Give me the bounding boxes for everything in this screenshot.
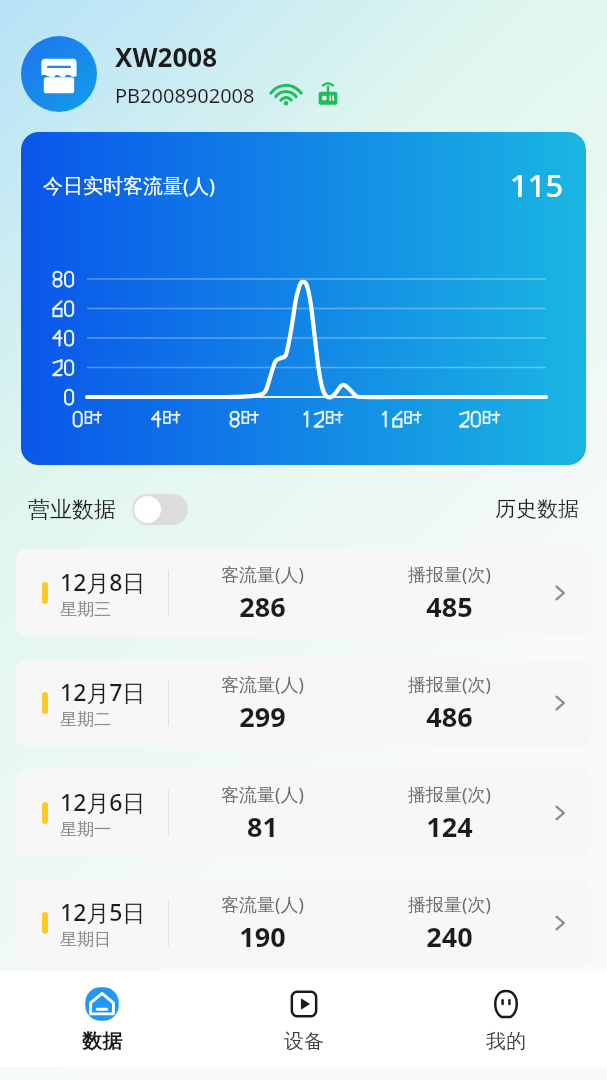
other: Device online [315, 83, 341, 109]
button[interactable]: 12月5日 [16, 879, 591, 967]
staticText: 历史数据 [495, 496, 579, 522]
staticText: 数据 [82, 1029, 122, 1054]
staticText: 客流量(人) [221, 672, 304, 697]
staticText: 今日实时客流量(人) [43, 172, 215, 199]
staticText: 星期日 [60, 929, 111, 950]
staticText: 星期三 [60, 599, 111, 620]
staticText: 485 [426, 588, 473, 625]
staticText: 客流量(人) [221, 892, 304, 917]
staticText: 营业数据 [28, 496, 116, 524]
staticText: 星期一 [60, 819, 111, 840]
button[interactable]: 今日实时客流量(人) [21, 132, 586, 465]
staticText: 我的 [486, 1029, 526, 1054]
button[interactable]: 我的 [405, 971, 607, 1067]
button[interactable]: 12月6日 [16, 769, 591, 857]
staticText: 12月8日 [60, 566, 146, 597]
staticText: 客流量(人) [221, 782, 304, 807]
other: Wi-Fi connected [273, 83, 299, 109]
button[interactable]: 12月8日 [16, 549, 591, 637]
staticText: 12月6日 [60, 786, 146, 817]
button[interactable]: 数据 [0, 971, 203, 1067]
staticText: 播报量(次) [408, 782, 491, 807]
staticText: 客流量(人) [221, 562, 304, 587]
staticText: 星期二 [60, 709, 111, 730]
staticText: 486 [426, 698, 473, 735]
staticText: XW2008 [115, 39, 218, 74]
staticText: 190 [239, 918, 286, 955]
staticText: 286 [239, 588, 286, 625]
button[interactable]: 设备 [203, 971, 405, 1067]
staticText: 设备 [284, 1029, 324, 1054]
staticText: 115 [510, 164, 564, 206]
staticText: 124 [426, 808, 473, 845]
staticText: 240 [426, 918, 473, 955]
staticText: 12月5日 [60, 896, 146, 927]
staticText: 81 [247, 808, 278, 845]
staticText: 播报量(次) [408, 892, 491, 917]
button[interactable]: 历史数据 [495, 496, 579, 522]
staticText: 299 [239, 698, 286, 735]
staticText: 12月7日 [60, 676, 146, 707]
button[interactable]: 营业数据 [28, 494, 188, 525]
staticText: 播报量(次) [408, 562, 491, 587]
staticText: 播报量(次) [408, 672, 491, 697]
staticText: PB2008902008 [115, 82, 255, 109]
button[interactable]: 12月7日 [16, 659, 591, 747]
